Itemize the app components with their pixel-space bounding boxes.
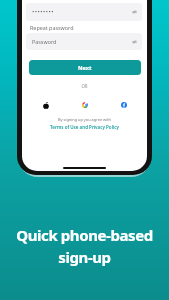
button[interactable]: Sign up with Apple [29,97,63,113]
button[interactable]: Terms of Use and Privacy Policy [22,124,147,130]
button[interactable]: Sign up with Facebook [107,97,141,113]
staticText: OR [22,83,147,89]
staticText: •••••••• [32,8,55,16]
staticText: Quick phone-based sign-up [0,225,169,267]
staticText: Password [32,38,57,45]
button[interactable]: Next [29,60,141,75]
button[interactable]: Sign up with Google [68,97,102,113]
staticText: Next [78,64,92,72]
button[interactable]: Password [26,33,142,50]
staticText: By signing up you agree with [22,117,147,122]
staticText: Repeat password [30,24,74,31]
button[interactable]: •••••••• [26,3,142,21]
